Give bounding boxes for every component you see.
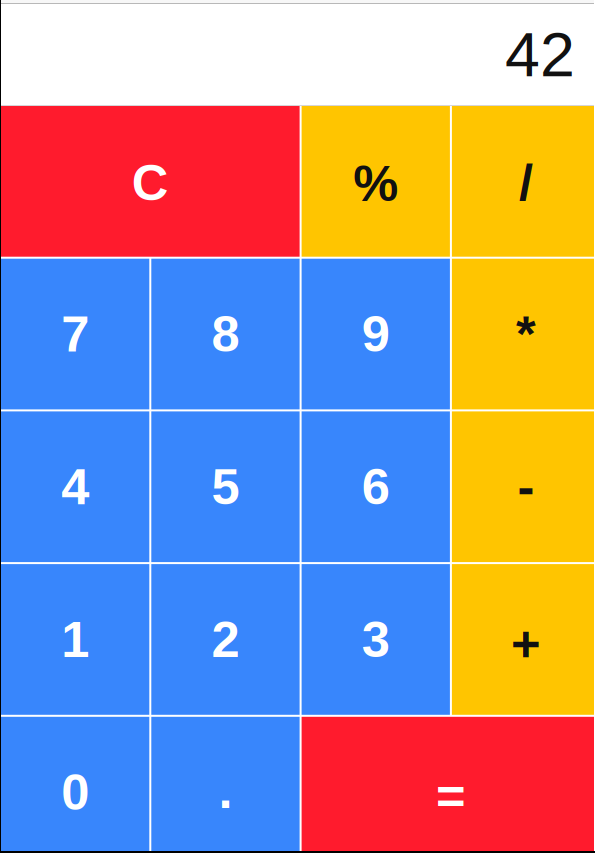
staticText: %: [353, 155, 398, 212]
staticText: -: [518, 458, 535, 515]
staticText: 8: [211, 306, 239, 362]
staticText: 0: [61, 764, 89, 820]
staticText: 4: [61, 458, 89, 515]
button[interactable]: C: [1, 106, 300, 257]
button[interactable]: 0: [1, 717, 149, 853]
button[interactable]: =: [302, 717, 595, 853]
button[interactable]: 6: [302, 411, 450, 562]
staticText: 5: [211, 458, 239, 515]
button[interactable]: +: [452, 564, 595, 715]
button[interactable]: 8: [151, 259, 300, 409]
button[interactable]: .: [151, 717, 300, 853]
button[interactable]: 3: [302, 564, 450, 715]
staticText: 1: [61, 611, 89, 668]
staticText: +: [511, 615, 541, 672]
staticText: 2: [211, 611, 239, 668]
staticText: /: [519, 154, 533, 210]
button[interactable]: %: [302, 106, 450, 257]
staticText: 42: [505, 19, 575, 89]
button[interactable]: 9: [302, 259, 450, 409]
staticText: 9: [362, 306, 390, 362]
button[interactable]: -: [452, 411, 595, 562]
staticText: =: [436, 768, 466, 825]
staticText: 7: [61, 306, 89, 362]
staticText: 3: [362, 611, 390, 668]
button[interactable]: 5: [151, 411, 300, 562]
button[interactable]: 1: [1, 564, 149, 715]
staticText: .: [218, 762, 232, 819]
button[interactable]: 4: [1, 411, 149, 562]
staticText: *: [516, 306, 536, 362]
staticText: C: [132, 154, 169, 211]
staticText: 6: [362, 458, 390, 515]
button[interactable]: 2: [151, 564, 300, 715]
button[interactable]: 7: [1, 259, 149, 409]
button[interactable]: /: [452, 106, 595, 257]
button[interactable]: *: [452, 259, 595, 409]
